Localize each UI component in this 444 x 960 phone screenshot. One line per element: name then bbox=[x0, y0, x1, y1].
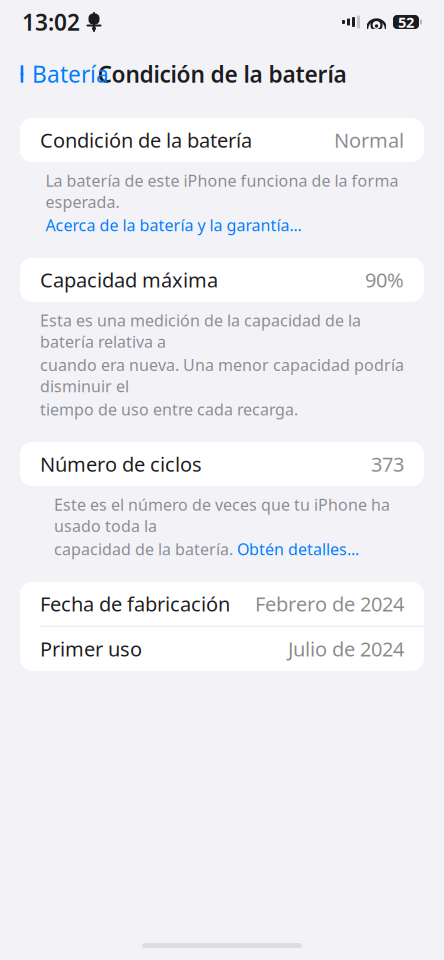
button[interactable]: Acerca de la batería y la garantía... bbox=[45, 214, 301, 236]
staticText: cuando era nueva. Una menor capacidad po… bbox=[40, 354, 404, 397]
staticText: Condición de la batería bbox=[40, 127, 252, 153]
button[interactable]: Fecha de fabricación bbox=[20, 582, 424, 626]
staticText: 373 bbox=[371, 451, 404, 477]
staticText: Primer uso bbox=[40, 635, 142, 662]
staticText: Condición de la batería bbox=[97, 59, 346, 89]
staticText: Obtén detalles... bbox=[237, 538, 359, 560]
staticText: capacidad de la batería. bbox=[54, 538, 233, 560]
staticText: Fecha de fabricación bbox=[40, 590, 230, 617]
staticText: Febrero de 2024 bbox=[255, 590, 404, 617]
button[interactable]: Batería bbox=[0, 53, 109, 95]
staticText: Número de ciclos bbox=[40, 451, 202, 477]
button[interactable]: Condición de la batería bbox=[0, 118, 444, 162]
staticText: Esta es una medición de la capacidad de … bbox=[40, 310, 361, 352]
button[interactable]: Capacidad máxima bbox=[0, 258, 444, 302]
staticText: 90% bbox=[365, 266, 404, 293]
button[interactable]: Número de ciclos bbox=[0, 442, 444, 486]
button[interactable]: Primer uso bbox=[20, 627, 424, 671]
staticText: Normal bbox=[334, 127, 404, 153]
button[interactable]: Obtén detalles... bbox=[237, 538, 359, 560]
staticText: Acerca de la batería y la garantía... bbox=[45, 214, 301, 236]
staticText: Julio de 2024 bbox=[288, 635, 404, 662]
staticText: tiempo de uso entre cada recarga. bbox=[40, 399, 298, 420]
staticText: Batería bbox=[32, 59, 109, 89]
staticText: Capacidad máxima bbox=[40, 266, 218, 293]
staticText: La batería de este iPhone funciona de la… bbox=[45, 170, 398, 212]
staticText: Este es el número de veces que tu iPhone… bbox=[54, 494, 390, 536]
staticText: 13:02 bbox=[22, 7, 80, 37]
staticText: 52 bbox=[398, 12, 414, 32]
